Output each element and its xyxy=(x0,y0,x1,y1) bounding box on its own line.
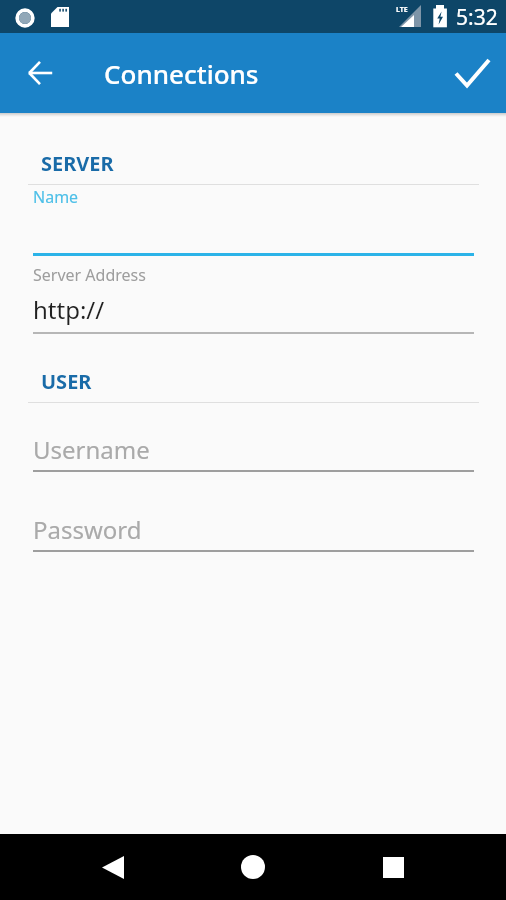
button[interactable]: Username xyxy=(33,433,474,471)
button[interactable]: Save xyxy=(448,49,496,97)
button[interactable]: Back xyxy=(89,843,137,891)
staticText: Password xyxy=(33,513,142,546)
button[interactable]: Recent apps xyxy=(369,843,417,891)
staticText: SERVER xyxy=(41,150,114,177)
staticText: LTE xyxy=(396,5,408,15)
staticText: Username xyxy=(33,433,150,466)
staticText: 5:32 xyxy=(456,3,498,32)
button[interactable]: Home xyxy=(229,843,277,891)
staticText: Connections xyxy=(104,56,259,91)
button[interactable]: Name xyxy=(33,186,474,256)
staticText: Name xyxy=(33,186,79,208)
button[interactable]: Server Address xyxy=(33,264,474,334)
button[interactable]: Password xyxy=(33,513,474,551)
staticText: http:// xyxy=(33,293,105,326)
staticText: Server Address xyxy=(33,264,146,286)
button[interactable]: Navigate up xyxy=(16,49,64,97)
staticText: USER xyxy=(41,368,92,395)
